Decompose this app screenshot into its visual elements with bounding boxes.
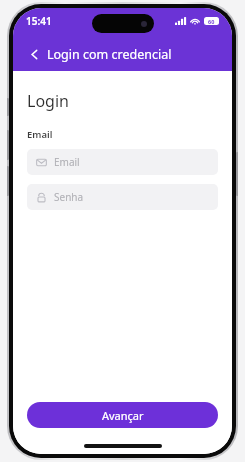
staticText: Login [27, 90, 69, 112]
staticText: Senha [54, 190, 84, 204]
button[interactable]: Senha [27, 184, 218, 210]
staticText: Avançar [102, 408, 144, 423]
staticText: 15:41 [26, 14, 52, 28]
button[interactable]: Email [27, 149, 218, 175]
staticText: Email [54, 155, 80, 169]
button[interactable]: Avançar [27, 402, 218, 428]
staticText: 60 [208, 18, 215, 25]
button[interactable]: Back [21, 41, 47, 67]
staticText: Email [27, 128, 53, 141]
staticText: Login com credencial [47, 46, 172, 63]
